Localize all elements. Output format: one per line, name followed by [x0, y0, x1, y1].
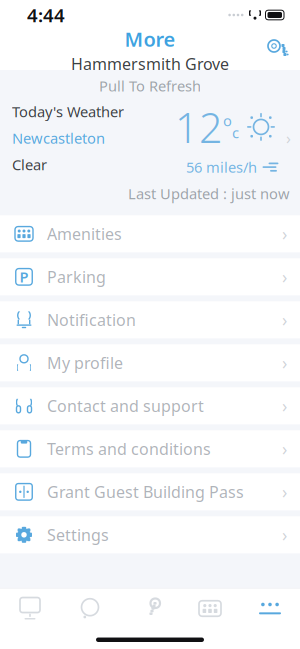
staticText: Last Updated : just now	[128, 184, 290, 203]
staticText: 56 miles/h	[186, 157, 257, 177]
staticText: Pull To Refresh	[99, 76, 201, 95]
staticText: Parking	[47, 266, 106, 287]
staticText: ›	[286, 127, 291, 149]
staticText: Notification	[47, 309, 136, 330]
staticText: Settings	[47, 524, 109, 545]
staticText: Hammersmith Grove	[71, 53, 229, 74]
staticText: Terms and conditions	[47, 438, 211, 459]
staticText: 12	[175, 99, 223, 154]
staticText: ›	[282, 437, 287, 460]
staticText: ›	[282, 394, 287, 417]
button[interactable]: P	[0, 258, 300, 295]
button[interactable]: Contact and support	[0, 387, 300, 424]
button[interactable]: My profile	[0, 344, 300, 381]
button[interactable]: Terms and conditions	[0, 430, 300, 467]
staticText: 4:44	[27, 3, 65, 27]
staticText: Clear	[12, 155, 47, 174]
staticText: ›	[282, 480, 287, 503]
staticText: o	[223, 111, 232, 130]
button[interactable]: More	[240, 588, 300, 628]
button[interactable]: Today's Weather	[0, 95, 300, 177]
button[interactable]: Grant Guest Building Pass	[0, 473, 300, 510]
staticText: c	[232, 123, 239, 142]
staticText: More	[124, 26, 175, 52]
staticText: My profile	[47, 352, 123, 373]
staticText: Grant Guest Building Pass	[47, 481, 244, 502]
button[interactable]: Messages	[60, 588, 120, 628]
staticText: Amenities	[47, 223, 122, 244]
staticText: Newcastleton	[12, 128, 105, 148]
staticText: P	[19, 267, 28, 287]
button[interactable]: Access key	[256, 30, 300, 70]
button[interactable]: Service requests	[120, 588, 180, 628]
staticText: ›	[282, 308, 287, 331]
staticText: ›	[282, 265, 287, 288]
button[interactable]: Dashboard	[0, 588, 60, 628]
staticText: ›	[282, 523, 287, 546]
staticText: ›	[282, 222, 287, 245]
button[interactable]: Notification	[0, 301, 300, 338]
button[interactable]: Amenities	[180, 588, 240, 628]
staticText: ›	[282, 351, 287, 374]
staticText: Contact and support	[47, 395, 204, 416]
button[interactable]: Settings	[0, 516, 300, 553]
button[interactable]: Amenities	[0, 215, 300, 252]
staticText: Today's Weather	[12, 102, 124, 121]
